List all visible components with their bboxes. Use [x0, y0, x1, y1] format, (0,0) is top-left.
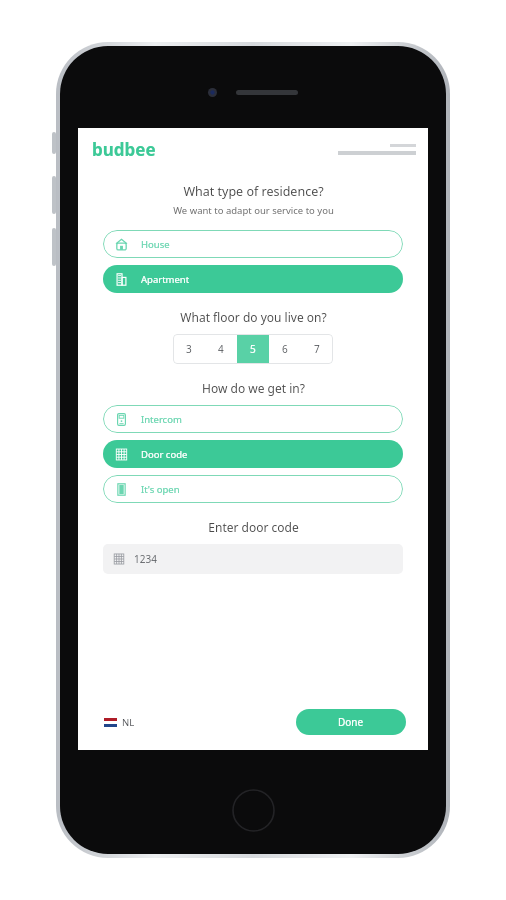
staticText: Done	[338, 715, 364, 729]
staticText: We want to adapt our service to you	[173, 204, 334, 217]
staticText: 1234	[134, 552, 157, 566]
button[interactable]: 4	[205, 334, 237, 364]
button[interactable]: 3	[173, 334, 205, 364]
staticText: House	[141, 238, 170, 251]
staticText: Intercom	[141, 413, 182, 426]
button[interactable]: NL	[100, 712, 139, 733]
button[interactable]: Door code	[103, 440, 403, 468]
staticText: Enter door code	[208, 519, 299, 535]
staticText: Apartment	[141, 273, 190, 286]
staticText: budbee	[92, 138, 156, 161]
button[interactable]: Done	[296, 709, 406, 735]
button[interactable]: House	[103, 230, 403, 258]
staticText: 6	[282, 342, 288, 356]
staticText: Door code	[141, 448, 188, 461]
staticText: 4	[218, 342, 224, 356]
staticText: 7	[314, 342, 320, 356]
staticText: NL	[122, 716, 135, 729]
button[interactable]: 6	[269, 334, 301, 364]
staticText: What type of residence?	[183, 183, 324, 200]
button[interactable]: It's open	[103, 475, 403, 503]
button[interactable]: Intercom	[103, 405, 403, 433]
staticText: What floor do you live on?	[180, 309, 327, 325]
staticText: 5	[250, 342, 256, 356]
button[interactable]: Apartment	[103, 265, 403, 293]
staticText: It's open	[141, 483, 180, 496]
staticText: 3	[186, 342, 192, 356]
staticText: How do we get in?	[202, 380, 305, 396]
button[interactable]: 1234	[103, 544, 403, 574]
button[interactable]: 7	[301, 334, 333, 364]
button[interactable]: 5	[237, 334, 269, 364]
